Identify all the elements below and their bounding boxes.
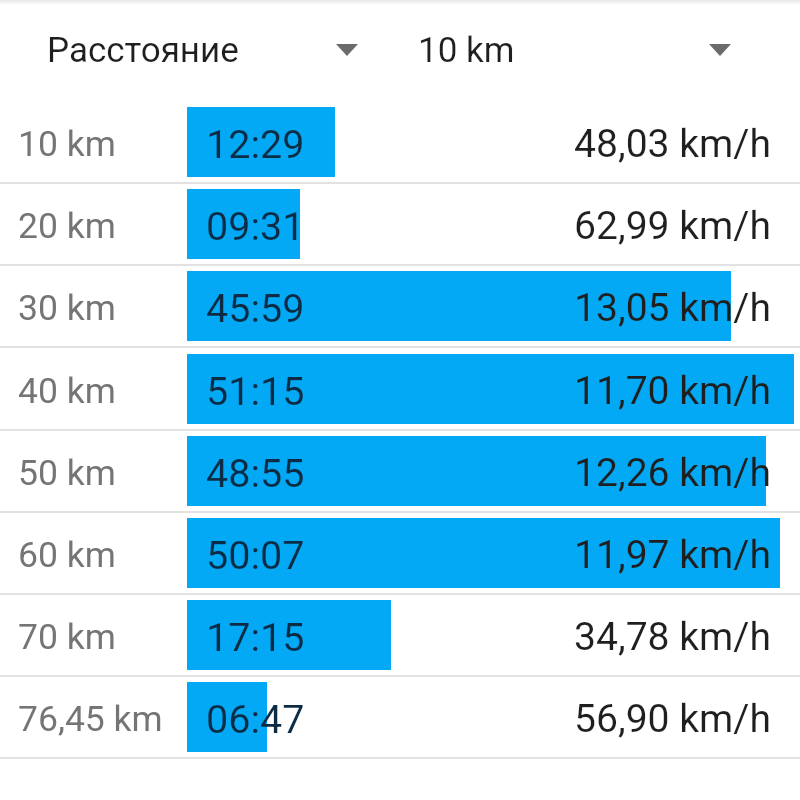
staticText: 13,05 km/h <box>574 285 772 331</box>
button[interactable]: 76,45 km <box>0 676 800 758</box>
staticText: 48:55 <box>206 450 305 496</box>
staticText: 09:31 <box>206 203 305 249</box>
staticText: 50 km <box>18 452 116 494</box>
staticText: 45:59 <box>206 285 305 331</box>
staticText: 12:29 <box>206 121 305 167</box>
button[interactable]: 60 km <box>0 512 800 594</box>
button[interactable]: Выбор параметра: Расстояние <box>20 6 368 88</box>
staticText: 11,97 km/h <box>574 532 772 578</box>
button[interactable]: 20 km <box>0 183 800 265</box>
button[interactable]: 30 km <box>0 265 800 347</box>
staticText: 40 km <box>18 370 116 412</box>
staticText: 60 km <box>18 534 116 576</box>
staticText: 76,45 km <box>18 698 163 740</box>
staticText: 34,78 km/h <box>574 614 772 660</box>
button[interactable]: Выбор интервала: 10 km <box>395 6 755 88</box>
staticText: 30 km <box>18 287 116 329</box>
staticText: 12,26 km/h <box>574 450 772 496</box>
staticText: 10 km <box>418 30 515 71</box>
staticText: 20 km <box>18 205 116 247</box>
staticText: 62,99 km/h <box>574 203 772 249</box>
staticText: 56,90 km/h <box>574 696 772 742</box>
staticText: 17:15 <box>206 614 305 660</box>
button[interactable]: 10 km <box>0 101 800 183</box>
button[interactable]: 50 km <box>0 430 800 512</box>
staticText: 10 km <box>18 123 116 165</box>
staticText: 70 km <box>18 616 116 658</box>
button[interactable]: 70 km <box>0 594 800 676</box>
staticText: 48,03 km/h <box>574 121 772 167</box>
staticText: 50:07 <box>206 532 305 578</box>
staticText: 11,70 km/h <box>574 368 772 414</box>
staticText: Расстояние <box>47 30 239 71</box>
staticText: 51:15 <box>206 368 305 414</box>
staticText: 06:47 <box>206 696 305 742</box>
button[interactable]: 40 km <box>0 348 800 430</box>
